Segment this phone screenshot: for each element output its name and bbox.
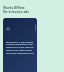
staticText: Works Offline [3, 6, 25, 10]
other: App icon [6, 27, 10, 31]
staticText: No intrusive ads [3, 10, 29, 14]
staticText: Blackout is a fully offline capable appl… [6, 40, 36, 55]
button[interactable]: App icon [3, 18, 37, 72]
